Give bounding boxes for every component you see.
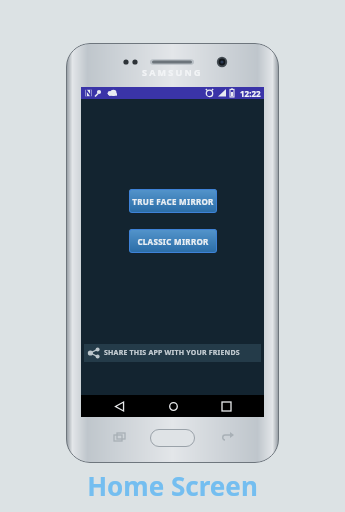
button[interactable]: Recents (211, 395, 241, 417)
staticText: SAMSUNG (142, 66, 203, 78)
button[interactable]: TRUE FACE MIRROR (129, 189, 217, 213)
staticText: SHARE THIS APP WITH YOUR FRIENDS (104, 348, 240, 358)
other: Share (88, 347, 100, 359)
staticText: CLASSIC MIRROR (137, 236, 209, 247)
button[interactable]: CLASSIC MIRROR (129, 229, 217, 253)
staticText: 12:22 (240, 88, 261, 99)
staticText: TRUE FACE MIRROR (132, 196, 214, 207)
button[interactable]: Home (158, 395, 188, 417)
button[interactable]: Share (84, 344, 261, 362)
button[interactable]: Back (104, 395, 134, 417)
staticText: Home Screen (87, 468, 258, 503)
